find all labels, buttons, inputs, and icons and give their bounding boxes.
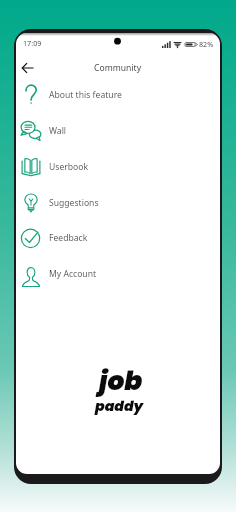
staticText: Wall: [49, 125, 67, 137]
button[interactable]: Back: [17, 57, 39, 79]
button[interactable]: Feedback: [16, 220, 220, 256]
staticText: paddy: [95, 396, 144, 416]
staticText: Suggestions: [49, 197, 99, 209]
button[interactable]: My Account: [16, 256, 220, 292]
staticText: Community: [94, 62, 142, 74]
staticText: Feedback: [49, 232, 88, 244]
staticText: 82%: [199, 39, 214, 49]
staticText: Userbook: [49, 161, 89, 173]
staticText: 17:09: [23, 38, 42, 48]
staticText: My Account: [49, 268, 97, 280]
staticText: About this feature: [49, 89, 122, 101]
button[interactable]: Wall: [16, 113, 220, 149]
button[interactable]: Suggestions: [16, 185, 220, 221]
staticText: job: [99, 362, 143, 399]
button[interactable]: About this feature: [16, 77, 220, 113]
button[interactable]: Userbook: [16, 149, 220, 185]
